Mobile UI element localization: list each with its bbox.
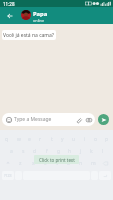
- button[interactable]: o: [90, 135, 101, 143]
- button[interactable]: Send: [98, 114, 109, 125]
- staticText: w: [17, 136, 21, 143]
- staticText: p: [105, 136, 109, 143]
- staticText: g: [57, 148, 61, 155]
- staticText: a: [10, 148, 13, 155]
- button[interactable]: p: [101, 135, 112, 143]
- staticText: e: [28, 136, 31, 143]
- button[interactable]: n: [75, 159, 87, 167]
- staticText: d: [33, 148, 37, 155]
- staticText: Papa: [33, 10, 48, 18]
- staticText: m: [91, 160, 96, 167]
- button[interactable]: v: [51, 159, 63, 167]
- staticText: 11:28: [3, 1, 15, 7]
- button[interactable]: Você já está na cama?: [2, 30, 56, 40]
- button[interactable]: Type a Message: [2, 113, 95, 126]
- staticText: r: [39, 136, 42, 143]
- button[interactable]: Click to print text: [34, 155, 79, 164]
- button[interactable]: c: [39, 159, 51, 167]
- staticText: t: [51, 136, 53, 143]
- staticText: l: [102, 148, 104, 155]
- button[interactable]: b: [63, 159, 75, 167]
- button[interactable]: w: [13, 135, 24, 143]
- button[interactable]: Contact photo: [21, 10, 31, 20]
- button[interactable]: k: [86, 147, 97, 155]
- button[interactable]: a: [5, 147, 17, 155]
- staticText: j: [80, 148, 82, 155]
- button[interactable]: g: [53, 147, 64, 155]
- staticText: Type a Message: [14, 116, 52, 123]
- other: Attach: [76, 117, 82, 123]
- button[interactable]: m: [87, 159, 99, 167]
- staticText: i: [84, 136, 86, 143]
- button[interactable]: Back: [4, 10, 16, 22]
- staticText: v: [56, 160, 59, 167]
- button[interactable]: q: [1, 135, 13, 143]
- button[interactable]: h: [64, 147, 75, 155]
- staticText: b: [67, 160, 71, 167]
- button[interactable]: ?123: [2, 171, 14, 180]
- staticText: online: [33, 18, 45, 23]
- staticText: s: [22, 148, 25, 155]
- staticText: h: [68, 148, 72, 155]
- staticText: z: [19, 160, 22, 167]
- staticText: n: [79, 160, 83, 167]
- staticText: ?123: [4, 173, 12, 178]
- other: Camera: [86, 117, 92, 123]
- staticText: o: [94, 136, 98, 143]
- staticText: u: [72, 136, 76, 143]
- staticText: q: [5, 136, 9, 143]
- button[interactable]: d: [29, 147, 41, 155]
- staticText: x: [32, 160, 35, 167]
- staticText: f: [46, 148, 48, 155]
- staticText: c: [44, 160, 47, 167]
- button[interactable]: x: [27, 159, 39, 167]
- staticText: Você já está na cama?: [3, 32, 55, 39]
- staticText: y: [61, 136, 64, 143]
- button[interactable]: e: [24, 135, 35, 143]
- staticText: k: [90, 148, 93, 155]
- staticText: Click to print text: [39, 157, 75, 163]
